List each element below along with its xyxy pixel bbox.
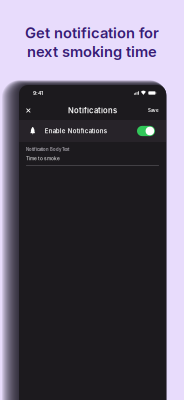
- staticText: Time to smoke: [26, 155, 60, 161]
- staticText: next smoking time: [27, 43, 157, 60]
- staticText: 9:41: [33, 90, 43, 96]
- staticText: Enable Notifications: [45, 127, 107, 135]
- button[interactable]: Save: [146, 103, 159, 118]
- staticText: Get notification for: [25, 24, 159, 42]
- button[interactable]: Enable Notifications: [19, 120, 166, 142]
- staticText: Save: [148, 108, 159, 113]
- staticText: Notifications: [68, 106, 117, 115]
- staticText: Notification Body Text: [26, 147, 69, 152]
- button[interactable]: Close: [26, 103, 39, 118]
